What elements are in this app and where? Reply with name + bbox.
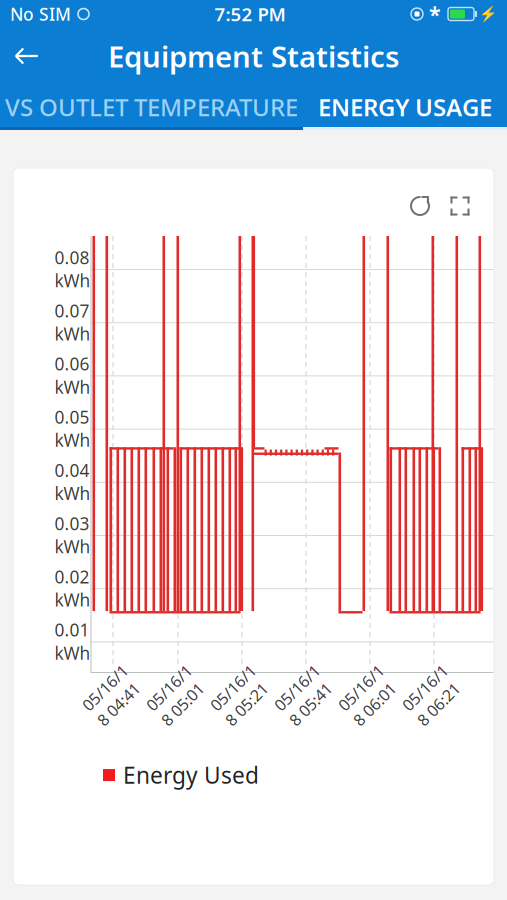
- staticText: 05/16/18 05:01: [148, 674, 205, 716]
- staticText: 7:52 PM: [214, 2, 285, 26]
- staticText: 05/16/18 04:41: [84, 674, 141, 716]
- staticText: 0.06 kWh: [54, 352, 90, 398]
- button[interactable]: Back: [0, 28, 54, 84]
- staticText: Equipment Statistics: [108, 36, 399, 75]
- staticText: 0.03 kWh: [54, 512, 90, 558]
- staticText: 0.02 kWh: [54, 565, 90, 611]
- button[interactable]: VS OUTLET TEMPERATURE: [0, 84, 303, 130]
- staticText: 05/16/18 06:21: [404, 674, 461, 716]
- staticText: 05/16/18 05:41: [276, 674, 333, 716]
- button[interactable]: Full screen: [440, 186, 480, 226]
- staticText: ENERGY USAGE: [318, 91, 492, 123]
- staticText: 05/16/18 05:21: [212, 674, 269, 716]
- staticText: 0.05 kWh: [54, 406, 90, 452]
- button[interactable]: ENERGY USAGE: [303, 84, 507, 130]
- staticText: 0.07 kWh: [54, 299, 90, 345]
- staticText: 0.04 kWh: [54, 459, 90, 505]
- staticText: *: [429, 0, 441, 28]
- staticText: 0.08 kWh: [54, 246, 90, 292]
- staticText: VS OUTLET TEMPERATURE: [5, 91, 298, 123]
- staticText: No SIM: [10, 2, 71, 25]
- staticText: 05/16/18 06:01: [340, 674, 397, 716]
- staticText: Energy Used: [123, 760, 259, 790]
- staticText: ⚡: [479, 6, 497, 22]
- button[interactable]: Refresh: [400, 186, 440, 226]
- staticText: 0.01 kWh: [54, 618, 90, 664]
